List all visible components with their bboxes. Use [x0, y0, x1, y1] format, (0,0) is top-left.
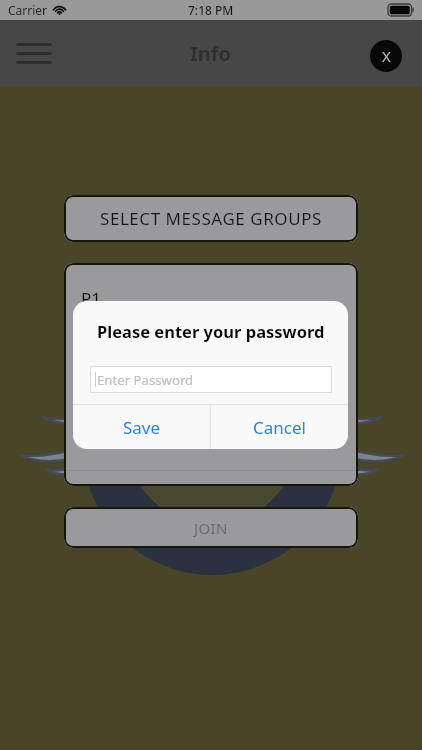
button[interactable]: Menu — [11, 30, 57, 76]
staticText: Please enter your password — [97, 320, 325, 342]
staticText: Carrier — [8, 2, 48, 18]
staticText: SELECT MESSAGE GROUPS — [100, 207, 322, 230]
button[interactable]: Cancel — [211, 405, 348, 449]
button[interactable]: JOIN — [64, 507, 358, 548]
button[interactable]: SELECT MESSAGE GROUPS — [64, 195, 358, 242]
button[interactable]: Save — [73, 405, 210, 449]
staticText: Save — [123, 416, 161, 439]
button[interactable]: Close — [370, 40, 402, 72]
staticText: Enter Password — [97, 371, 194, 389]
staticText: 7:18 PM — [188, 2, 234, 18]
staticText: P1 — [81, 287, 102, 310]
staticText: Info — [190, 40, 232, 67]
staticText: JOIN — [194, 518, 228, 538]
staticText: X — [382, 46, 391, 66]
staticText: Cancel — [253, 416, 306, 439]
